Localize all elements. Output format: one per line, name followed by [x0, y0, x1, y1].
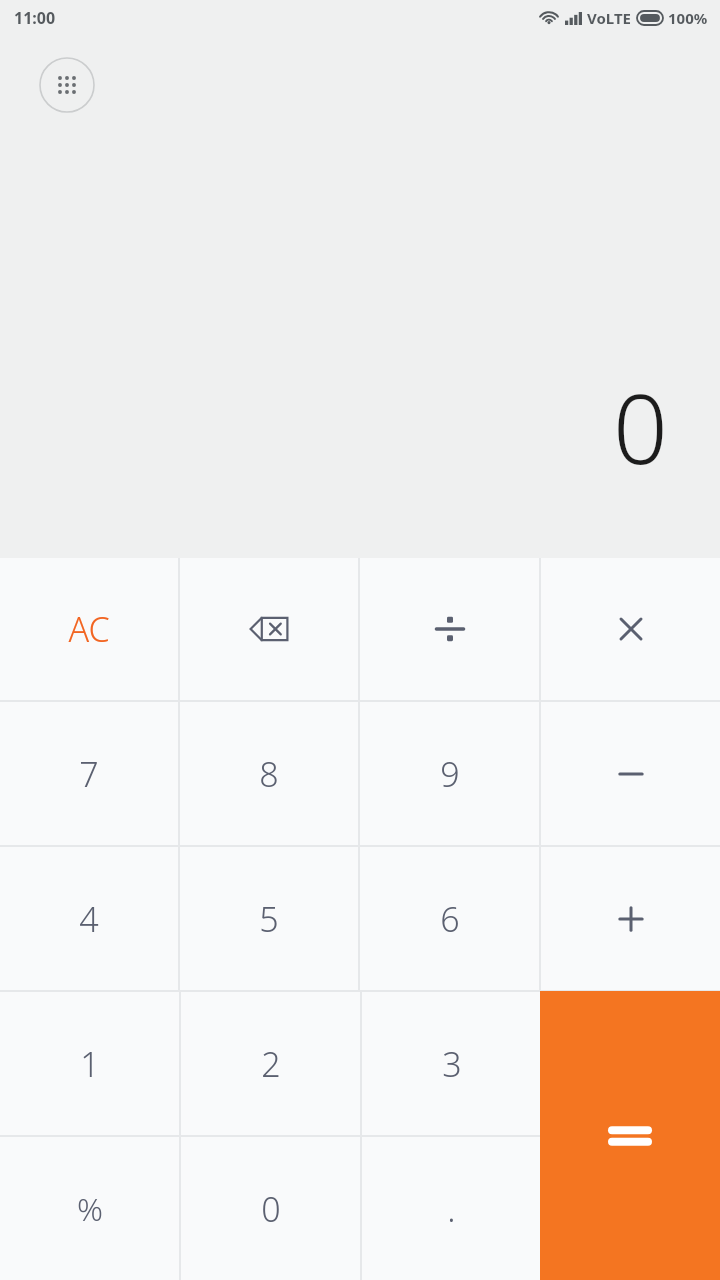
button[interactable]: 7 — [0, 702, 178, 845]
staticText: 1 — [80, 1041, 100, 1087]
button[interactable]: 1 — [0, 992, 179, 1135]
button[interactable]: 8 — [180, 702, 358, 845]
button[interactable]: . — [362, 1137, 541, 1280]
button[interactable]: 4 — [0, 847, 178, 990]
staticText: 3 — [442, 1041, 462, 1087]
staticText: 8 — [259, 751, 279, 797]
button[interactable]: Divide — [360, 558, 539, 700]
staticText: AC — [68, 606, 110, 652]
button[interactable]: Equals — [540, 991, 720, 1280]
staticText: 9 — [440, 751, 460, 797]
button[interactable]: Minus — [541, 702, 720, 845]
staticText: 100% — [668, 8, 708, 28]
button[interactable]: Multiply — [541, 558, 720, 700]
staticText: 11:00 — [14, 7, 56, 29]
button[interactable]: 5 — [180, 847, 358, 990]
button[interactable]: 6 — [360, 847, 539, 990]
staticText: VoLTE — [587, 8, 631, 28]
staticText: % — [77, 1187, 103, 1231]
staticText: . — [447, 1186, 456, 1232]
button[interactable]: % — [0, 1137, 179, 1280]
button[interactable]: 2 — [181, 992, 360, 1135]
button[interactable]: Backspace — [180, 558, 358, 700]
staticText: 6 — [440, 896, 460, 942]
staticText: 5 — [259, 896, 279, 942]
staticText: 0 — [613, 361, 668, 492]
staticText: 2 — [261, 1041, 281, 1087]
staticText: 7 — [79, 751, 99, 797]
button[interactable]: AC — [0, 558, 178, 700]
button[interactable]: 9 — [360, 702, 539, 845]
button[interactable]: 0 — [181, 1137, 360, 1280]
staticText: 4 — [79, 896, 99, 942]
button[interactable]: Menu — [39, 57, 95, 113]
button[interactable]: Plus — [541, 847, 720, 990]
staticText: 0 — [261, 1186, 281, 1232]
button[interactable]: 3 — [362, 992, 541, 1135]
